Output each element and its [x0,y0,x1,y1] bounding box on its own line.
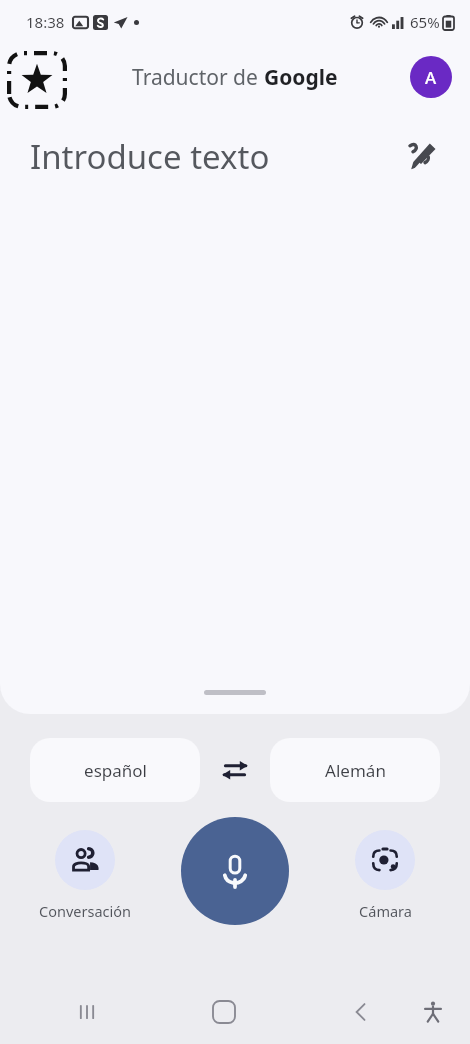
staticText: A [425,66,437,89]
button[interactable]: Micrófono [181,817,289,925]
staticText: Introduce texto [30,134,270,179]
button[interactable]: Cámara [320,830,450,921]
button[interactable]: Recientes [60,985,114,1039]
button[interactable]: Cambiar idiomas [200,738,270,802]
button[interactable]: Atrás [334,985,388,1039]
button[interactable]: Accesibilidad [406,985,460,1039]
staticText: 65% [410,12,440,32]
staticText: Google [264,63,338,92]
button[interactable]: Cuenta [410,56,452,98]
staticText: Alemán [325,759,386,782]
button[interactable]: Escritura a mano [396,130,448,182]
button[interactable]: Favorito [6,50,68,110]
staticText: Cámara [359,901,412,921]
button[interactable]: Inicio [197,985,251,1039]
staticText: español [84,759,147,782]
button[interactable]: Alemán [270,738,440,802]
button[interactable]: Introduce texto [30,134,396,179]
button[interactable] [198,684,272,701]
staticText: 18:38 [26,12,65,32]
button[interactable]: español [30,738,200,802]
staticText: Conversación [39,901,131,921]
button[interactable]: Conversación [20,830,150,921]
staticText: Traductor de [132,63,264,92]
